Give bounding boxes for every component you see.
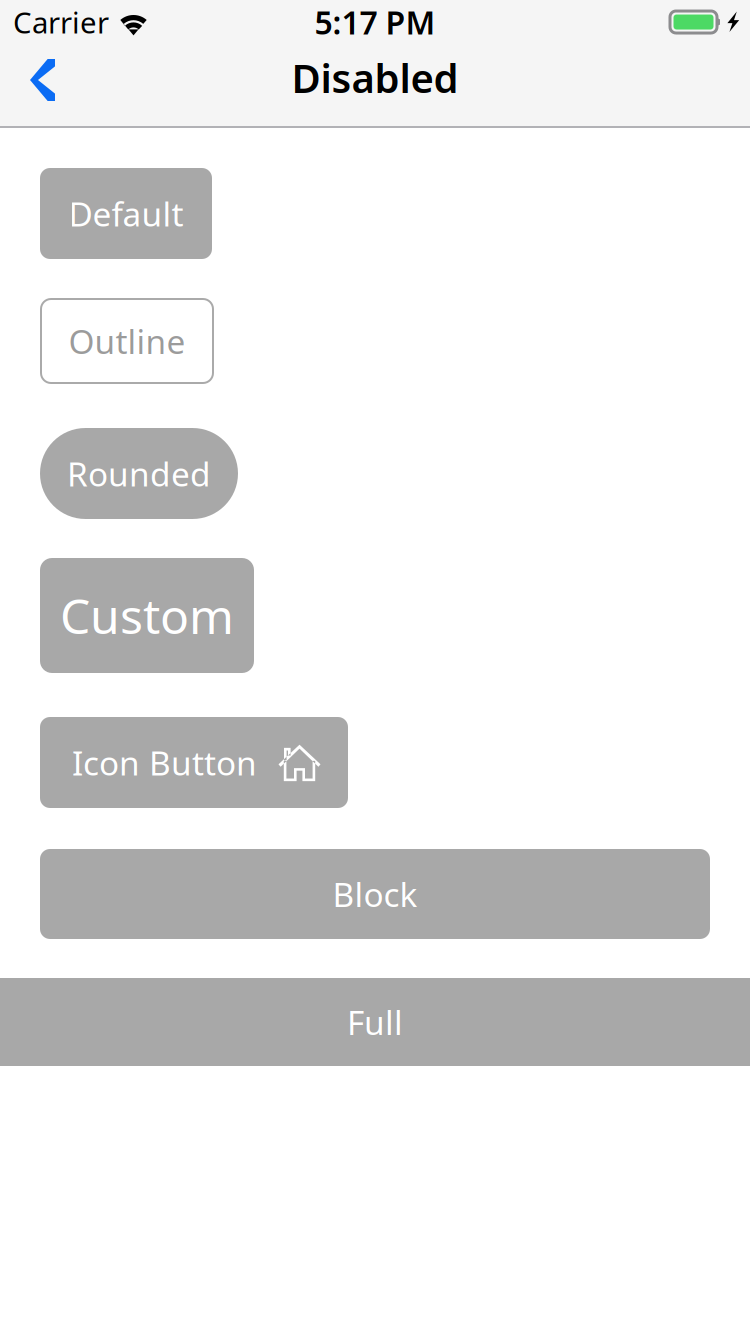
staticText: Full <box>347 1000 403 1044</box>
button[interactable]: Default <box>40 168 212 259</box>
staticText: 5:17 PM <box>314 1 435 43</box>
button[interactable]: Block <box>40 849 710 939</box>
staticText: Disabled <box>291 51 458 104</box>
staticText: Block <box>332 872 417 916</box>
button[interactable]: Icon Button <box>40 717 348 808</box>
staticText: Rounded <box>67 451 211 496</box>
staticText: Custom <box>60 584 234 647</box>
button[interactable]: Custom <box>40 558 254 673</box>
staticText: Icon Button <box>72 740 257 785</box>
staticText: Carrier <box>13 2 109 41</box>
staticText: Default <box>68 191 183 236</box>
button[interactable]: Full <box>0 978 750 1066</box>
button[interactable]: Rounded <box>40 428 238 519</box>
button[interactable]: Back <box>0 44 76 126</box>
staticText: Outline <box>68 319 185 363</box>
button[interactable]: Outline <box>40 298 214 384</box>
